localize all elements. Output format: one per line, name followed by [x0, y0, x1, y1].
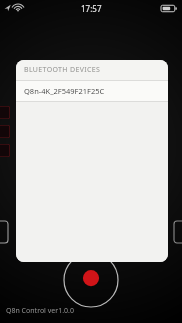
button[interactable]: Left control	[0, 221, 8, 243]
button[interactable]	[0, 144, 10, 157]
button[interactable]: Right control	[174, 221, 182, 243]
button[interactable]	[0, 106, 10, 119]
button[interactable]: Q8n-4K_2F549F21F25C	[16, 81, 168, 101]
button[interactable]: Record	[63, 252, 119, 308]
staticText: Q8n-4K_2F549F21F25C	[24, 86, 105, 96]
staticText: BLUETOOTH DEVICES	[24, 65, 101, 75]
staticText: 17:57	[81, 3, 102, 14]
button[interactable]	[0, 125, 10, 138]
staticText: Q8n Control ver1.0.0	[6, 306, 74, 316]
